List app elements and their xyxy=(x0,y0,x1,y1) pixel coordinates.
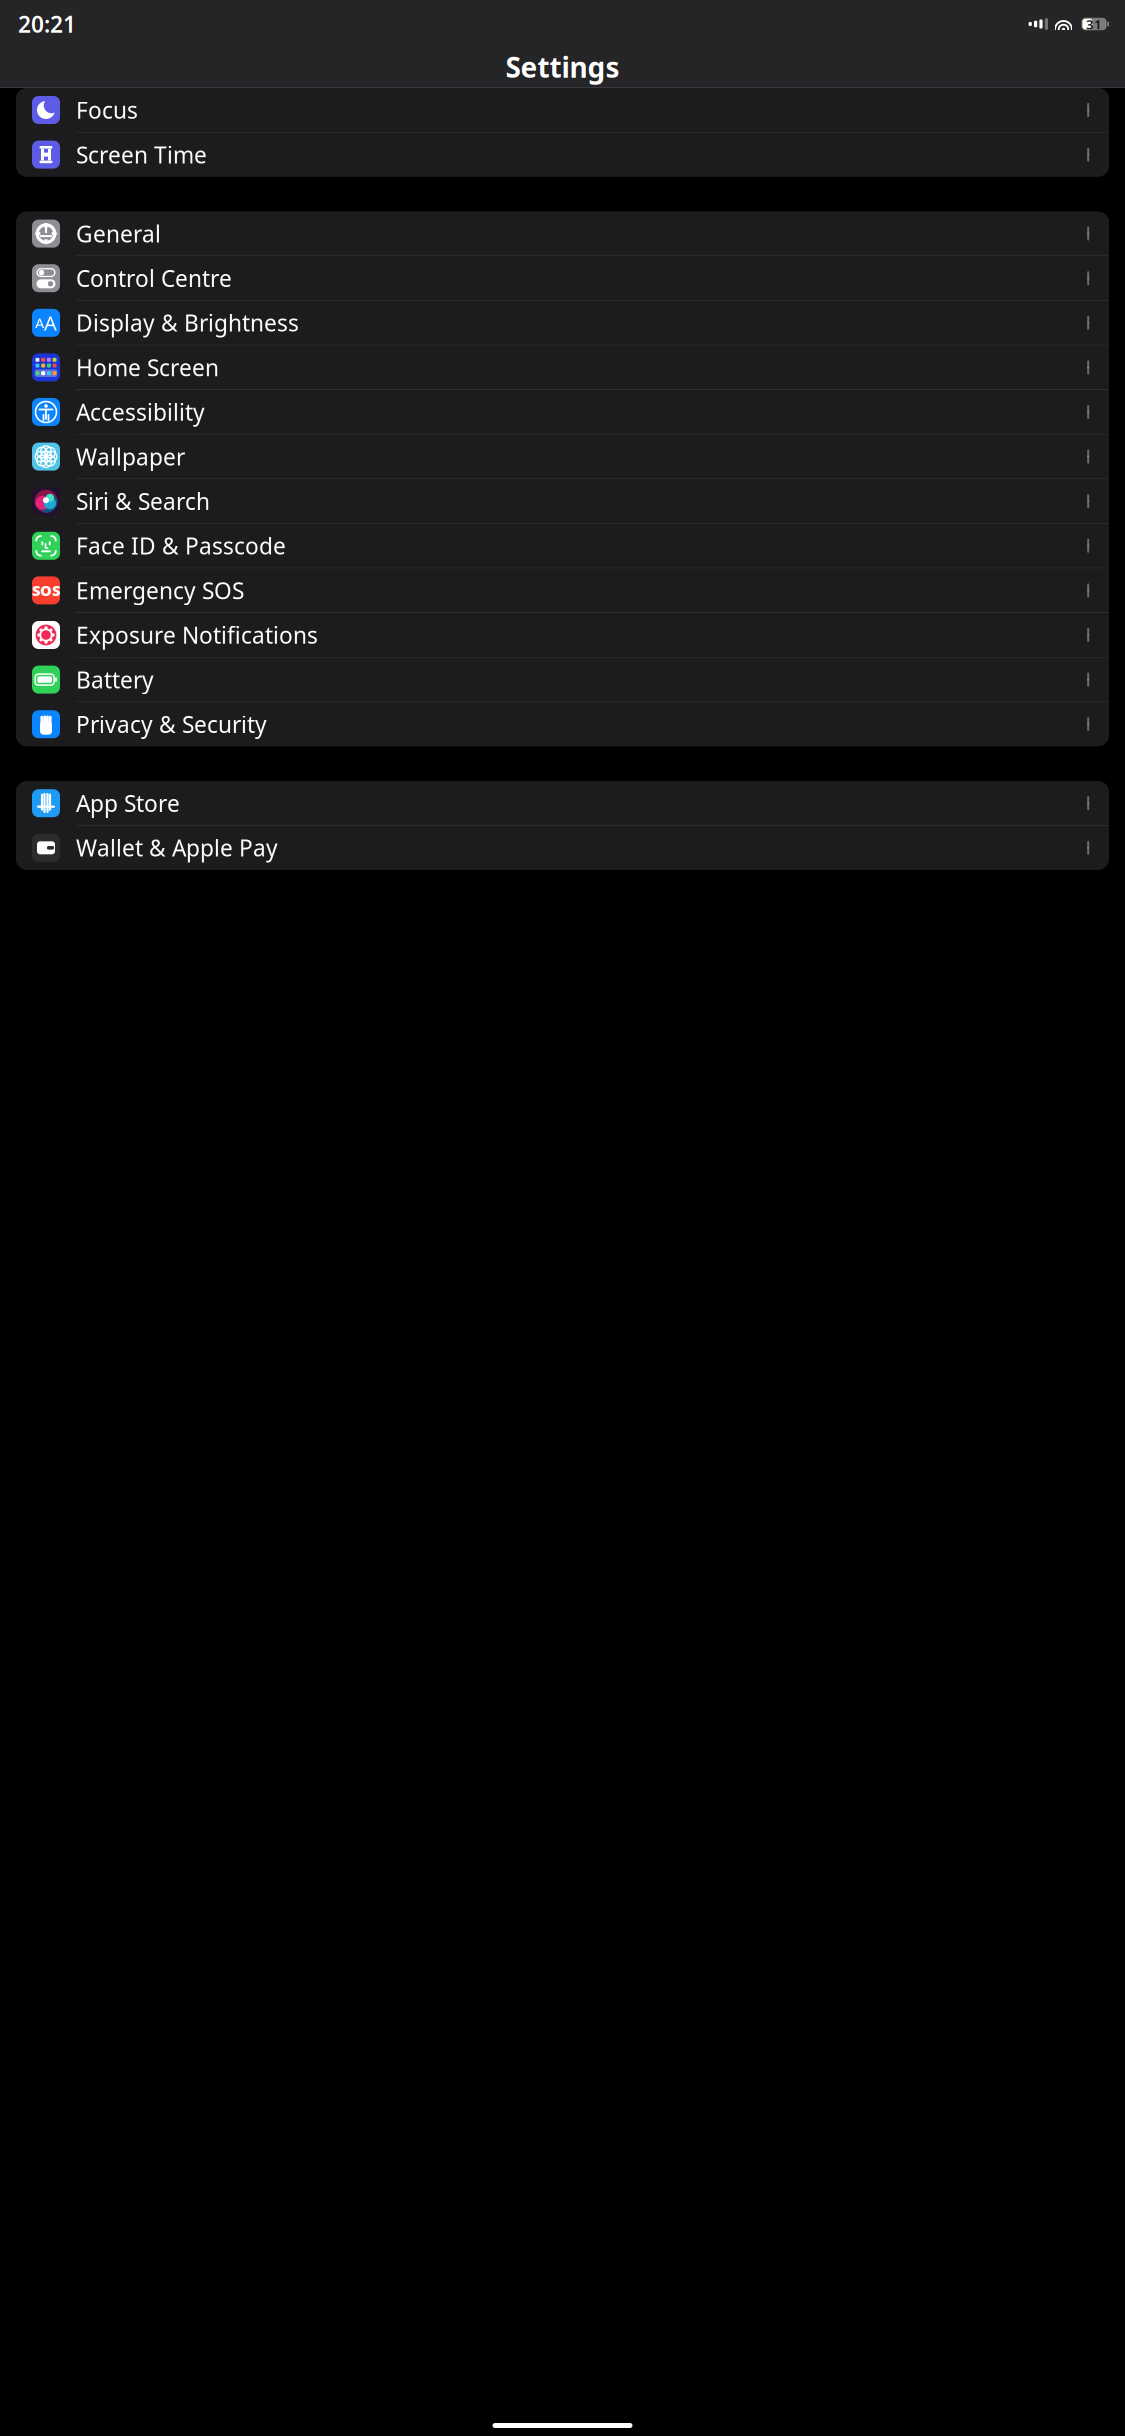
staticText: 20:21 xyxy=(18,9,76,39)
staticText: Face ID & Passcode xyxy=(76,531,286,561)
staticText: Battery xyxy=(76,664,154,695)
staticText: Exposure Notifications xyxy=(76,620,318,650)
staticText: Screen Time xyxy=(76,139,207,170)
button[interactable]: SOS xyxy=(16,568,1109,612)
button[interactable]: Wallpaper xyxy=(16,435,1109,479)
staticText: Siri & Search xyxy=(76,486,210,516)
button[interactable]: General xyxy=(16,212,1109,256)
staticText: 31 xyxy=(1086,15,1102,33)
button[interactable]: A xyxy=(16,301,1109,345)
staticText: Focus xyxy=(76,95,138,125)
button[interactable]: Wallet & Apple Pay xyxy=(16,826,1109,870)
staticText: A xyxy=(44,309,57,336)
button[interactable]: Accessibility xyxy=(16,390,1109,434)
button[interactable]: Battery xyxy=(16,658,1109,702)
staticText: Emergency SOS xyxy=(76,575,244,605)
button[interactable]: Exposure Notifications xyxy=(16,613,1109,657)
staticText: A xyxy=(35,313,44,333)
staticText: Accessibility xyxy=(76,397,205,427)
button[interactable]: Privacy & Security xyxy=(16,702,1109,746)
staticText: Privacy & Security xyxy=(76,709,267,739)
button[interactable]: Focus xyxy=(16,88,1109,132)
button[interactable]: Siri & Search xyxy=(16,479,1109,523)
button[interactable]: App Store xyxy=(16,781,1109,825)
button[interactable]: Control Centre xyxy=(16,256,1109,300)
staticText: SOS xyxy=(32,581,60,600)
button[interactable]: Screen Time xyxy=(16,133,1109,177)
button[interactable]: Face ID & Passcode xyxy=(16,524,1109,568)
button[interactable]: Home Screen xyxy=(16,345,1109,389)
staticText: Wallpaper xyxy=(76,441,185,472)
staticText: App Store xyxy=(76,788,180,818)
staticText: Home Screen xyxy=(76,352,219,382)
staticText: Display & Brightness xyxy=(76,308,299,338)
staticText: Settings xyxy=(505,48,619,86)
staticText: Control Centre xyxy=(76,263,232,293)
staticText: General xyxy=(76,218,161,249)
staticText: Wallet & Apple Pay xyxy=(76,833,278,863)
